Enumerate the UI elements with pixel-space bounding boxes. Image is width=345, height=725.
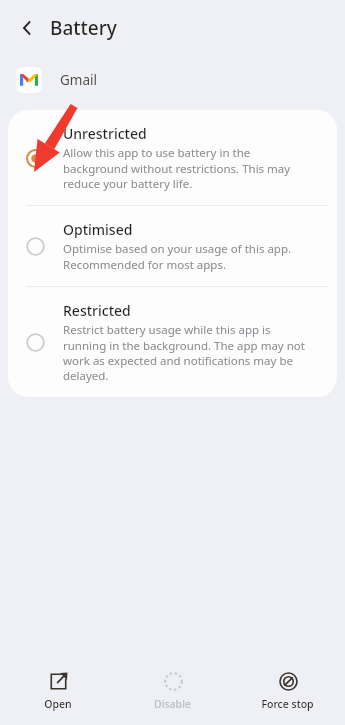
staticText: Gmail	[60, 71, 97, 89]
button[interactable]: Open	[0, 659, 115, 721]
staticText: Allow this app to use battery in the bac…	[63, 145, 291, 191]
button[interactable]: Force stop	[230, 659, 345, 721]
staticText: Disable	[154, 697, 191, 711]
staticText: Battery	[50, 15, 117, 41]
staticText: Restricted	[63, 301, 131, 320]
button[interactable]: Restricted	[8, 287, 337, 397]
staticText: Optimise based on your usage of this app…	[63, 241, 292, 272]
staticText: Restrict battery usage while this app is…	[63, 322, 305, 383]
staticText: Force stop	[261, 697, 314, 711]
button[interactable]: Disable	[115, 659, 230, 721]
staticText: Optimised	[63, 220, 133, 239]
button[interactable]: Gmail	[0, 56, 345, 104]
button[interactable]: Unrestricted	[8, 110, 337, 205]
staticText: Open	[44, 697, 72, 711]
staticText: Unrestricted	[63, 124, 147, 143]
button[interactable]: Back	[10, 11, 44, 45]
button[interactable]: Optimised	[8, 206, 337, 286]
